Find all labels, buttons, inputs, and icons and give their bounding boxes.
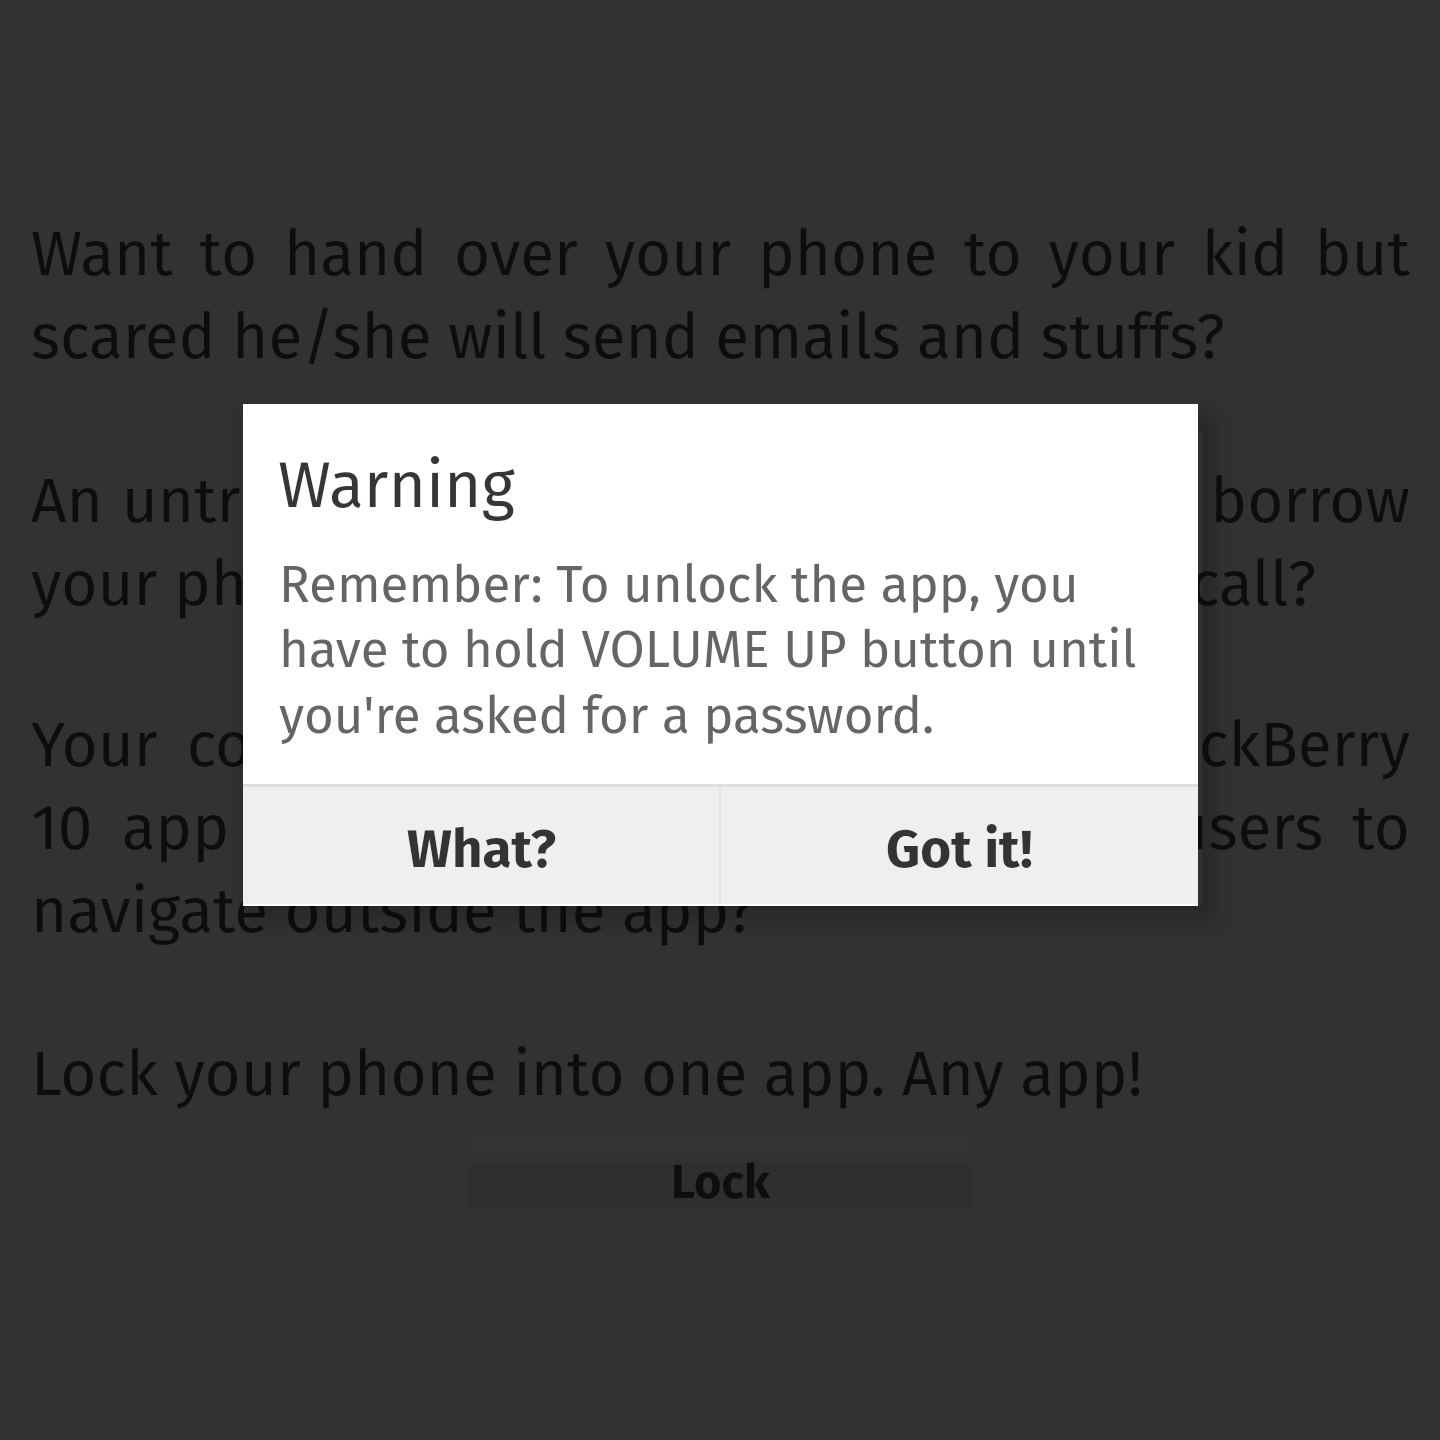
staticText: Remember: To unlock the app, you have to… <box>279 554 1141 747</box>
staticText: Got it! <box>886 817 1033 881</box>
button[interactable]: Lock <box>468 1136 972 1228</box>
button[interactable]: Got it! <box>721 787 1198 904</box>
staticText: An untrusted person or a friend wants to… <box>31 464 1410 621</box>
staticText: What? <box>407 817 556 881</box>
button[interactable]: What? <box>243 787 719 904</box>
staticText: Your corporation wants to deploy a Black… <box>31 708 1410 948</box>
staticText: Lock <box>671 1154 770 1210</box>
staticText: Want to hand over your phone to your kid… <box>31 217 1410 374</box>
staticText: Warning <box>278 447 515 524</box>
staticText: Lock your phone into one app. Any app! <box>31 1037 1410 1111</box>
